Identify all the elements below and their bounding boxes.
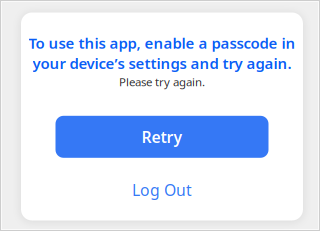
staticText: To use this app, enable a passcode in: [28, 33, 295, 53]
button[interactable]: Retry: [55, 116, 268, 158]
staticText: Retry: [141, 126, 182, 147]
staticText: your device’s settings and try again.: [32, 53, 291, 73]
button[interactable]: Log Out: [97, 173, 227, 207]
staticText: Please try again.: [119, 74, 205, 89]
staticText: Log Out: [132, 179, 192, 201]
